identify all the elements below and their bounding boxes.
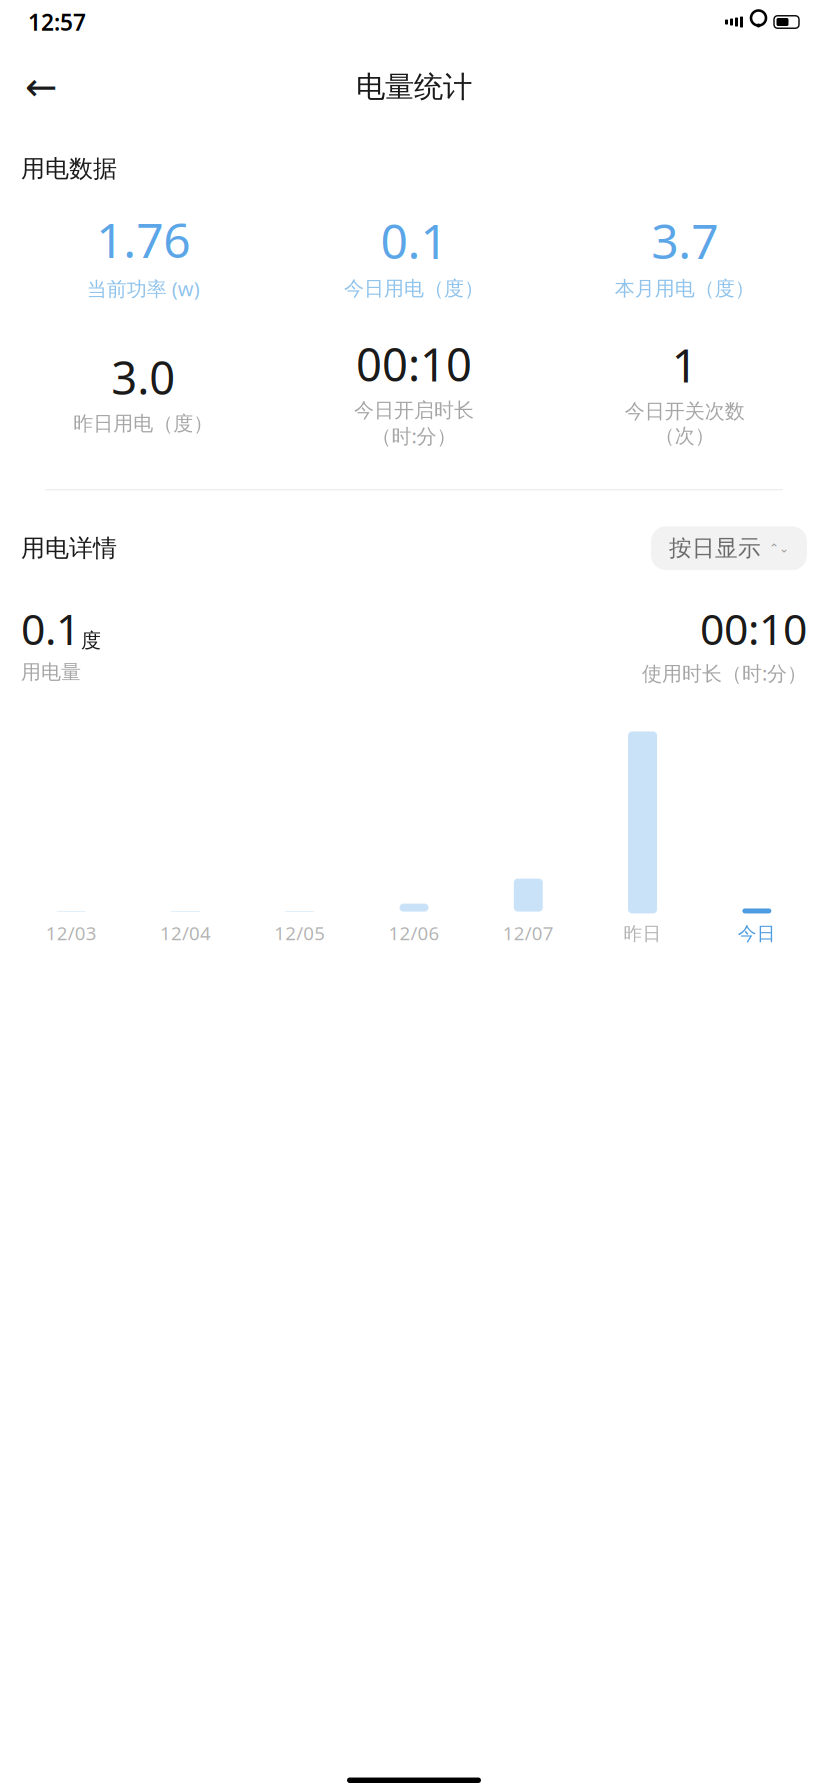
staticText: 本月用电（度） <box>615 276 755 301</box>
staticText: 度 <box>81 628 101 653</box>
staticText: 昨日 <box>624 922 662 945</box>
staticText: 3.0 <box>111 347 175 407</box>
staticText: 0.1 <box>380 208 447 272</box>
staticText: 今日开启时长 <box>354 398 474 423</box>
staticText: 12/06 <box>388 921 439 945</box>
staticText: 今日 <box>738 922 776 945</box>
staticText: 用电详情 <box>21 533 117 563</box>
staticText: 12/07 <box>503 921 554 945</box>
staticText: 12/04 <box>160 921 211 945</box>
staticText: 用电量 <box>21 660 81 684</box>
staticText: 1 <box>672 335 698 395</box>
staticText: 使用时长（时:分） <box>642 660 807 686</box>
staticText: 按日显示 <box>669 534 761 562</box>
staticText: 0.1 <box>21 600 80 657</box>
staticText: 当前功率 (w) <box>87 275 200 302</box>
staticText: ← <box>25 65 57 109</box>
staticText: 今日用电（度） <box>344 276 484 301</box>
button[interactable]: 按日显示 <box>651 526 807 570</box>
staticText: 00:10 <box>700 600 807 657</box>
button[interactable]: 返回 <box>18 64 64 110</box>
staticText: （时:分） <box>371 422 456 449</box>
staticText: 3.7 <box>651 208 718 272</box>
staticText: （次） <box>655 423 715 448</box>
staticText: 12/05 <box>274 921 325 945</box>
staticText: 昨日用电（度） <box>73 411 213 436</box>
staticText: 电量统计 <box>356 69 472 105</box>
staticText: 12:57 <box>28 7 86 37</box>
staticText: 用电数据 <box>21 154 117 183</box>
staticText: 今日开关次数 <box>625 399 745 424</box>
staticText: 00:10 <box>356 334 472 394</box>
staticText: ⌃⌄ <box>769 541 789 555</box>
staticText: 12/03 <box>46 921 97 945</box>
staticText: 1.76 <box>96 207 190 271</box>
